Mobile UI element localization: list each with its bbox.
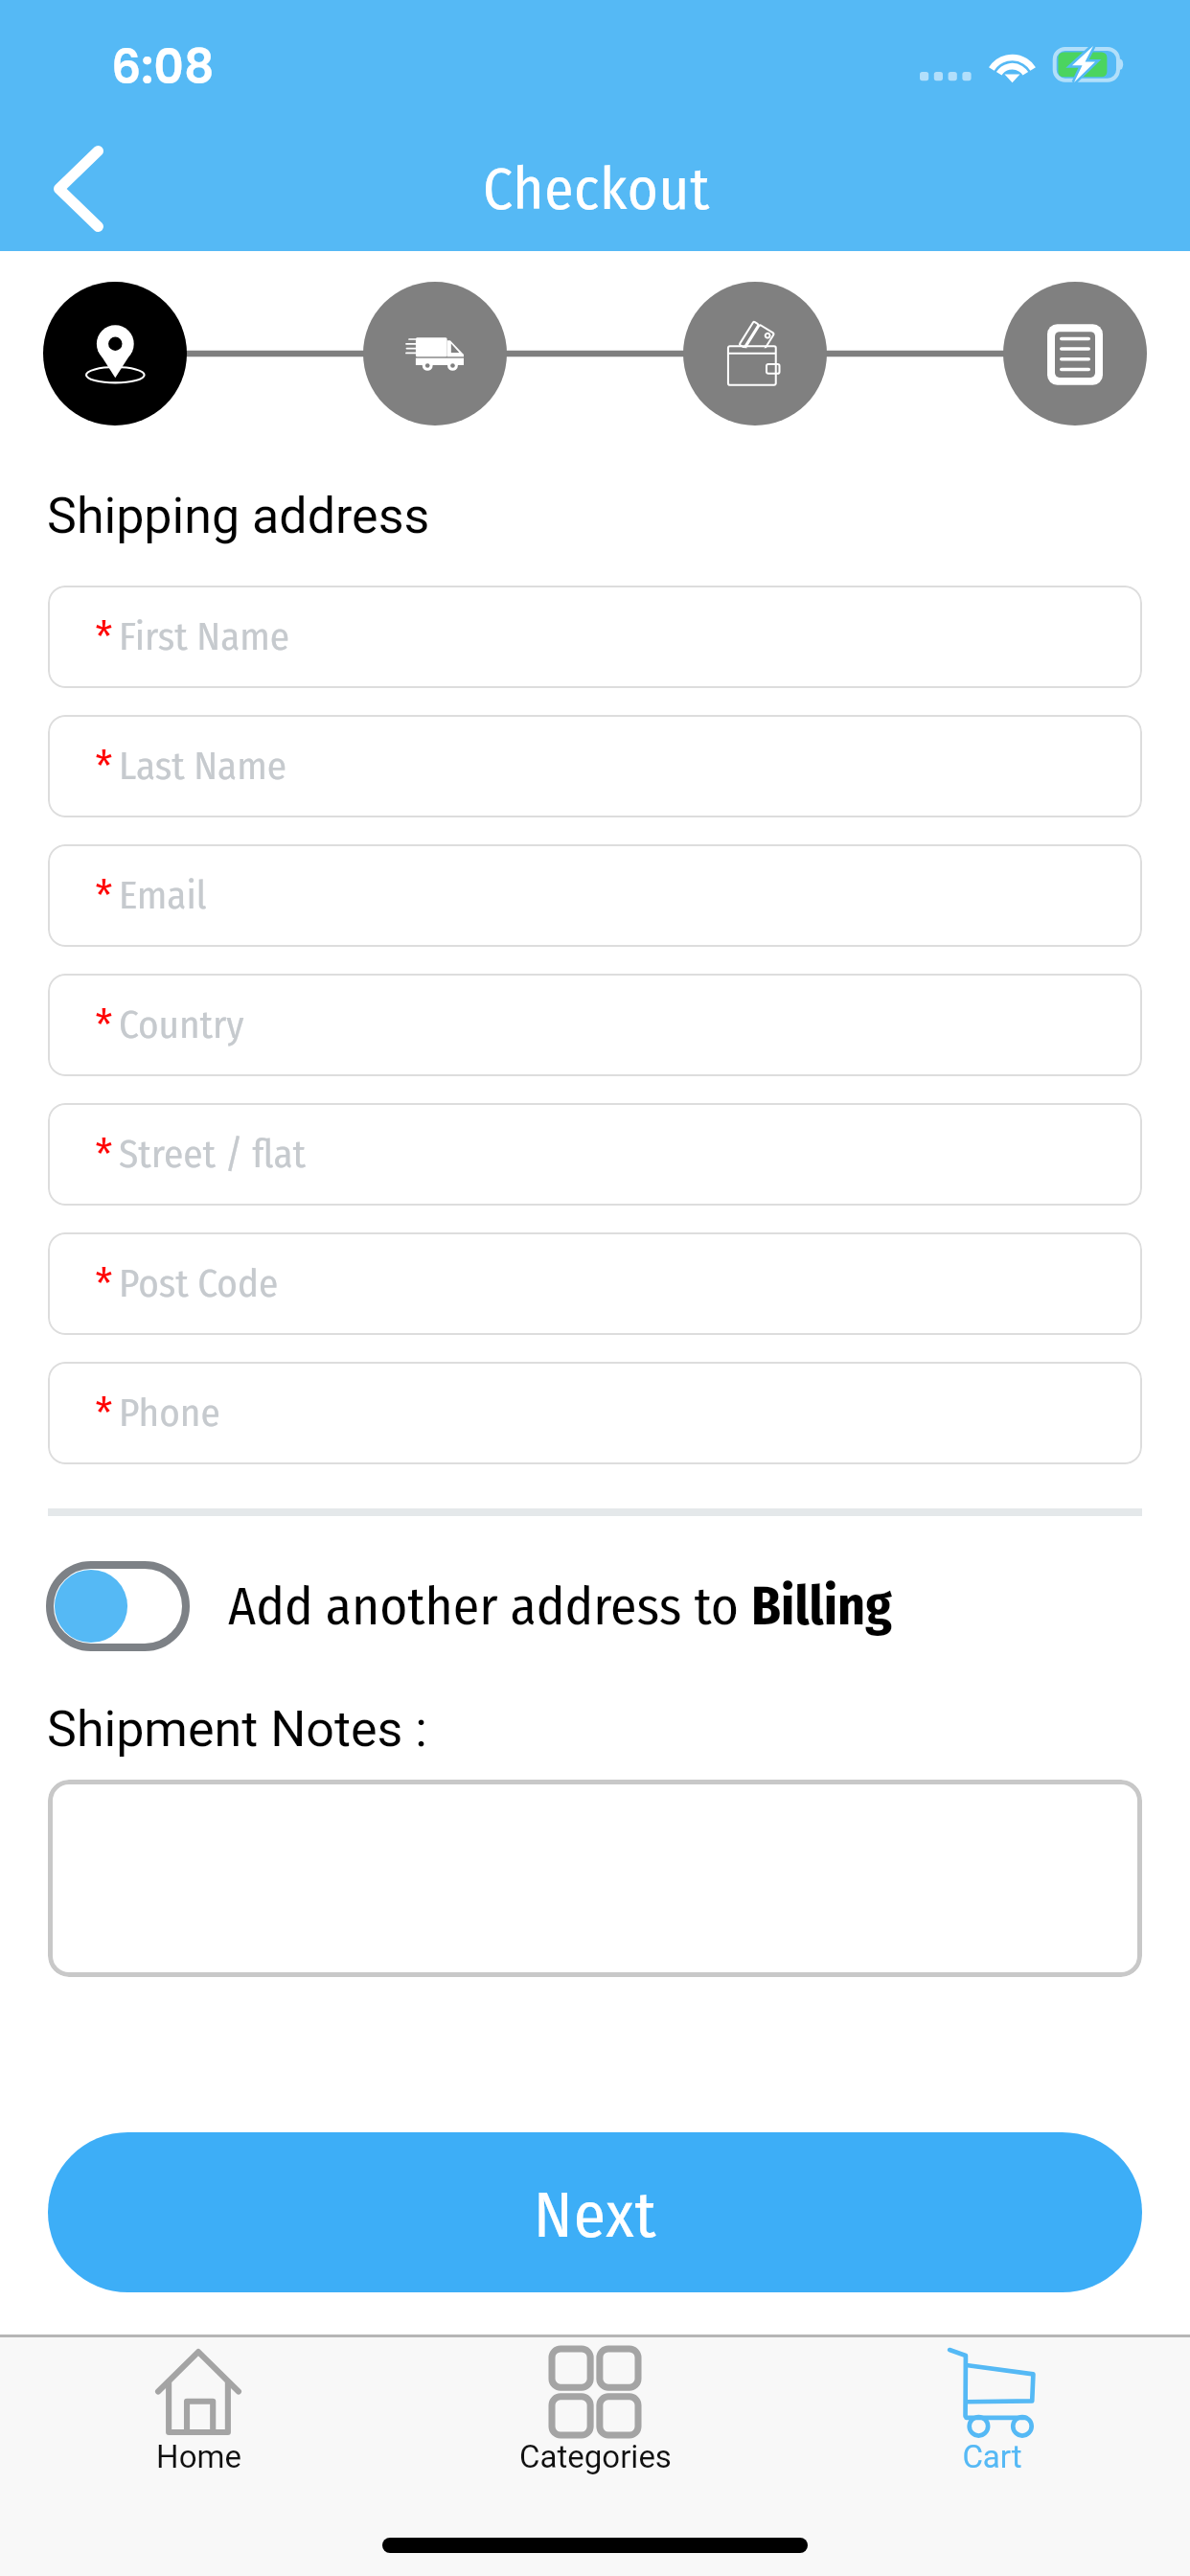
staticText: Email xyxy=(119,872,207,919)
button[interactable]: * xyxy=(48,844,1142,947)
staticText: Next xyxy=(534,2176,657,2253)
button[interactable]: Back xyxy=(25,128,132,248)
button[interactable]: Review order step xyxy=(1003,282,1147,425)
staticText: Country xyxy=(119,1001,244,1048)
staticText: First Name xyxy=(119,613,290,660)
staticText: Checkout xyxy=(483,154,710,224)
staticText: Cart xyxy=(962,2438,1022,2475)
staticText: Add another address to xyxy=(228,1575,751,1639)
button[interactable]: * xyxy=(48,974,1142,1076)
staticText: 6:08 xyxy=(111,34,215,101)
button[interactable]: Cart xyxy=(793,2349,1190,2475)
button[interactable]: * xyxy=(48,715,1142,817)
button[interactable] xyxy=(48,1780,1142,1977)
staticText: Phone xyxy=(119,1390,220,1437)
staticText: * xyxy=(95,1000,113,1052)
staticText: * xyxy=(95,611,113,664)
button[interactable]: Delivery step xyxy=(363,282,507,425)
staticText: Post Code xyxy=(119,1260,279,1307)
button[interactable]: Next xyxy=(48,2132,1142,2292)
button[interactable]: * xyxy=(48,1362,1142,1464)
staticText: Shipping address xyxy=(47,487,430,545)
staticText: Categories xyxy=(519,2438,672,2475)
staticText: * xyxy=(95,1258,113,1311)
button[interactable]: Categories xyxy=(397,2349,793,2475)
staticText: Home xyxy=(156,2438,241,2475)
button[interactable]: Payment step xyxy=(683,282,827,425)
staticText: * xyxy=(95,870,113,923)
button[interactable]: Add another address to Billing xyxy=(46,1561,190,1651)
staticText: * xyxy=(95,1129,113,1182)
staticText: Last Name xyxy=(119,743,286,790)
staticText: Street / flat xyxy=(119,1131,306,1178)
staticText: Shipment Notes : xyxy=(47,1700,427,1759)
button[interactable]: * xyxy=(48,586,1142,688)
staticText: Billing xyxy=(751,1575,892,1639)
button[interactable]: Shipping address step xyxy=(43,282,187,425)
button[interactable]: * xyxy=(48,1103,1142,1206)
staticText: * xyxy=(95,1388,113,1440)
button[interactable]: * xyxy=(48,1232,1142,1335)
button[interactable]: Home xyxy=(0,2349,397,2475)
staticText: * xyxy=(95,741,113,793)
